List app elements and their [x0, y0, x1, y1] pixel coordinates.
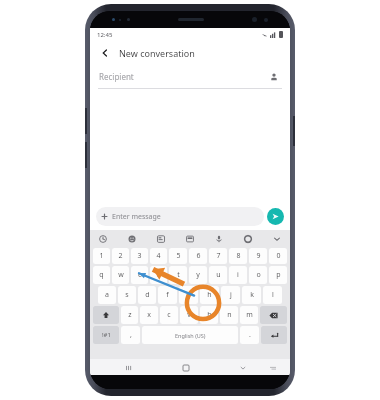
- staticText: Recipient: [99, 71, 134, 82]
- button[interactable]: Key: [260, 306, 287, 324]
- button[interactable]: Enter message: [96, 207, 264, 226]
- staticText: j: [230, 290, 232, 300]
- button[interactable]: Keyboard: [266, 361, 279, 374]
- button[interactable]: 8: [229, 248, 247, 264]
- staticText: r: [157, 270, 160, 280]
- button[interactable]: Key: [93, 326, 119, 344]
- button[interactable]: 5: [169, 248, 187, 264]
- button[interactable]: f: [158, 286, 177, 304]
- button[interactable]: g: [179, 286, 198, 304]
- button[interactable]: w: [112, 266, 129, 284]
- staticText: New conversation: [119, 47, 195, 59]
- staticText: b: [207, 310, 212, 320]
- button[interactable]: s: [118, 286, 136, 304]
- staticText: n: [227, 310, 232, 320]
- staticText: l: [272, 290, 274, 300]
- staticText: p: [276, 270, 281, 280]
- button[interactable]: Voice input: [212, 232, 226, 246]
- staticText: 4: [156, 251, 161, 261]
- button[interactable]: v: [180, 306, 198, 324]
- staticText: 2: [118, 251, 123, 261]
- button[interactable]: a: [98, 286, 116, 304]
- staticText: 7: [216, 251, 221, 261]
- staticText: e: [138, 270, 142, 280]
- button[interactable]: q: [93, 266, 110, 284]
- staticText: t: [177, 270, 180, 280]
- button[interactable]: u: [209, 266, 227, 284]
- button[interactable]: b: [200, 306, 218, 324]
- button[interactable]: Add contact: [267, 70, 281, 84]
- staticText: s: [125, 290, 129, 300]
- staticText: 12:45: [97, 31, 113, 39]
- button[interactable]: o: [249, 266, 267, 284]
- button[interactable]: e: [131, 266, 148, 284]
- button[interactable]: Recipient: [90, 65, 290, 88]
- button[interactable]: m: [240, 306, 258, 324]
- button[interactable]: Clipboard: [183, 232, 197, 246]
- button[interactable]: 7: [209, 248, 227, 264]
- staticText: k: [250, 290, 254, 300]
- button[interactable]: 0: [269, 248, 287, 264]
- button[interactable]: Stickers: [96, 232, 110, 246]
- button[interactable]: English (US): [142, 326, 238, 344]
- staticText: c: [167, 310, 171, 320]
- staticText: d: [145, 290, 150, 300]
- button[interactable]: h: [200, 286, 219, 304]
- button[interactable]: 2: [112, 248, 129, 264]
- staticText: v: [187, 310, 191, 320]
- staticText: 6: [196, 251, 201, 261]
- staticText: a: [105, 290, 109, 300]
- button[interactable]: Keyboard settings: [241, 232, 255, 246]
- staticText: f: [166, 290, 169, 300]
- button[interactable]: .: [240, 326, 259, 344]
- button[interactable]: t: [169, 266, 187, 284]
- staticText: g: [186, 290, 191, 300]
- button[interactable]: l: [263, 286, 282, 304]
- staticText: 0: [276, 251, 281, 261]
- staticText: z: [128, 310, 132, 320]
- button[interactable]: y: [189, 266, 207, 284]
- button[interactable]: 4: [150, 248, 167, 264]
- button[interactable]: d: [138, 286, 156, 304]
- staticText: y: [196, 270, 200, 280]
- button[interactable]: Back: [236, 361, 249, 374]
- button[interactable]: i: [229, 266, 247, 284]
- staticText: .: [249, 330, 251, 340]
- button[interactable]: Key: [93, 306, 119, 324]
- button[interactable]: 3: [131, 248, 148, 264]
- staticText: i: [237, 270, 239, 280]
- button[interactable]: Emoji: [125, 232, 139, 246]
- button[interactable]: 9: [249, 248, 267, 264]
- button[interactable]: Collapse: [270, 232, 284, 246]
- button[interactable]: GIF: [154, 232, 168, 246]
- staticText: 8: [236, 251, 241, 261]
- button[interactable]: k: [242, 286, 261, 304]
- button[interactable]: Back: [97, 45, 113, 61]
- staticText: o: [256, 270, 261, 280]
- staticText: 9: [256, 251, 261, 261]
- button[interactable]: x: [140, 306, 158, 324]
- staticText: !#1: [102, 331, 111, 339]
- staticText: English (US): [175, 332, 206, 339]
- button[interactable]: z: [121, 306, 138, 324]
- staticText: w: [118, 270, 124, 280]
- staticText: m: [246, 310, 253, 320]
- button[interactable]: Send: [267, 208, 284, 225]
- button[interactable]: 1: [93, 248, 110, 264]
- button[interactable]: Recents: [122, 361, 135, 374]
- staticText: x: [147, 310, 151, 320]
- button[interactable]: r: [150, 266, 167, 284]
- button[interactable]: p: [269, 266, 287, 284]
- staticText: 5: [176, 251, 181, 261]
- button[interactable]: ,: [121, 326, 140, 344]
- staticText: u: [216, 270, 221, 280]
- staticText: 3: [137, 251, 142, 261]
- button[interactable]: c: [160, 306, 178, 324]
- staticText: h: [207, 290, 212, 300]
- button[interactable]: Key: [261, 326, 287, 344]
- button[interactable]: j: [221, 286, 240, 304]
- button[interactable]: Home: [179, 361, 192, 374]
- staticText: 1: [99, 251, 104, 261]
- button[interactable]: n: [220, 306, 238, 324]
- button[interactable]: 6: [189, 248, 207, 264]
